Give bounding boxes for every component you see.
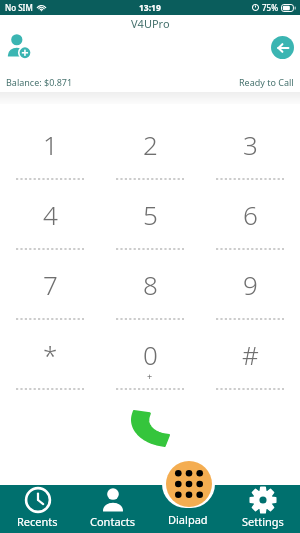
button[interactable]: 0 [100,320,200,390]
button[interactable]: Contacts [75,485,150,533]
staticText: V4UPro [131,16,170,31]
staticText: 13:19 [139,2,161,14]
staticText: Recents [17,514,58,529]
staticText: 9 [243,267,258,302]
button[interactable]: 7 [0,250,100,320]
button[interactable]: Add contact [4,31,34,61]
staticText: Ready to Call [239,76,294,88]
staticText: Settings [242,514,284,529]
staticText: 8 [143,267,158,302]
button[interactable]: 4 [0,180,100,250]
staticText: 6 [243,197,258,232]
staticText: 5 [143,197,158,232]
staticText: 75% [262,2,278,13]
staticText: 3 [243,127,258,162]
staticText: 1 [43,127,58,162]
button[interactable]: 8 [100,250,200,320]
button[interactable]: # [200,320,300,390]
staticText: No SIM [5,2,33,13]
staticText: 2 [143,127,158,162]
button[interactable]: 3 [200,110,300,180]
staticText: # [242,337,259,372]
button[interactable]: Settings [225,485,300,533]
staticText: 0 [143,337,158,372]
staticText: * [43,337,58,372]
staticText: Contacts [90,514,136,529]
button[interactable]: Recents [0,485,75,533]
staticText: Dialpad [168,512,208,527]
button[interactable]: 2 [100,110,200,180]
button[interactable]: Call [128,406,172,450]
button[interactable]: * [0,320,100,390]
staticText: 7 [43,267,58,302]
button[interactable]: Dialpad [162,460,215,508]
button[interactable]: 5 [100,180,200,250]
staticText: 4 [43,197,58,232]
button[interactable]: Backspace [271,36,294,59]
staticText: Balance: $0.871 [6,76,73,88]
button[interactable]: 6 [200,180,300,250]
staticText: + [147,370,153,382]
button[interactable]: 9 [200,250,300,320]
button[interactable]: Dialpad [150,485,225,533]
button[interactable]: 1 [0,110,100,180]
